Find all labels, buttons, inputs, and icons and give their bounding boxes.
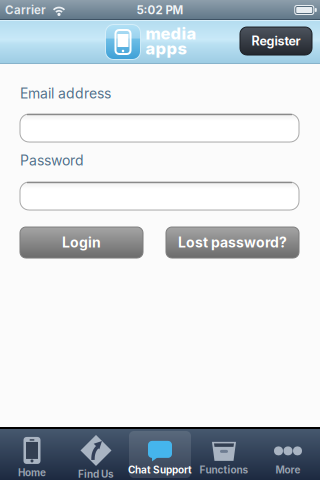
button[interactable]: Email address — [20, 114, 299, 142]
button[interactable]: Find Us — [64, 429, 128, 480]
button[interactable]: More — [256, 429, 320, 480]
staticText: Functions — [199, 464, 248, 476]
button[interactable]: Home — [0, 429, 64, 480]
button[interactable]: Register — [240, 28, 312, 56]
staticText: 5:02 PM — [136, 3, 183, 17]
staticText: apps — [145, 38, 186, 58]
button[interactable]: Lost password? — [166, 227, 299, 258]
staticText: Home — [18, 466, 46, 479]
button[interactable]: Login — [20, 227, 143, 258]
staticText: media — [145, 23, 196, 43]
staticText: Carrier — [5, 3, 46, 17]
staticText: Login — [62, 234, 101, 251]
button[interactable]: Chat Support — [128, 429, 192, 480]
staticText: More — [275, 464, 300, 476]
staticText: Register — [251, 33, 300, 48]
staticText: Lost password? — [178, 234, 287, 251]
staticText: Chat Support — [128, 464, 192, 476]
staticText: Find Us — [78, 468, 114, 480]
staticText: Password — [20, 152, 84, 169]
button[interactable]: Password — [20, 182, 299, 210]
button[interactable]: Functions — [192, 429, 256, 480]
staticText: Email address — [20, 85, 111, 102]
